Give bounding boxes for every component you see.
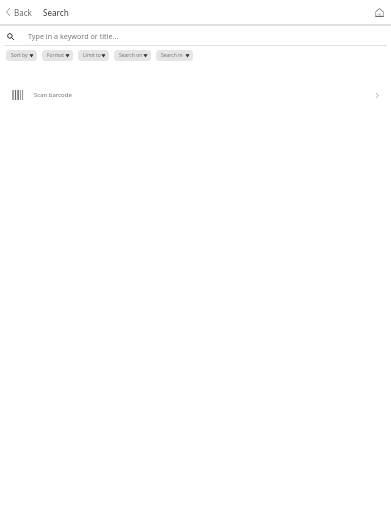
- staticText: Back: [14, 7, 32, 18]
- other: Search: [7, 33, 14, 40]
- staticText: Sort by: [11, 52, 28, 59]
- button[interactable]: Scan barcode: [0, 83, 391, 107]
- staticText: Search on: [119, 52, 143, 59]
- staticText: Search in: [161, 52, 183, 59]
- staticText: Scan barcode: [34, 91, 72, 99]
- button[interactable]: Sort by: [6, 50, 37, 61]
- button[interactable]: Limit to: [78, 50, 109, 61]
- button[interactable]: Format: [42, 50, 73, 61]
- staticText: Format: [47, 52, 64, 59]
- button[interactable]: Search on: [114, 50, 151, 61]
- button[interactable]: Home: [368, 0, 391, 24]
- staticText: Search: [43, 7, 69, 18]
- staticText: Limit to: [83, 52, 101, 59]
- button[interactable]: Search: [0, 26, 391, 44]
- button[interactable]: Search in: [156, 50, 193, 61]
- button[interactable]: Back: [0, 0, 37, 24]
- staticText: Type in a keyword or title...: [28, 31, 119, 41]
